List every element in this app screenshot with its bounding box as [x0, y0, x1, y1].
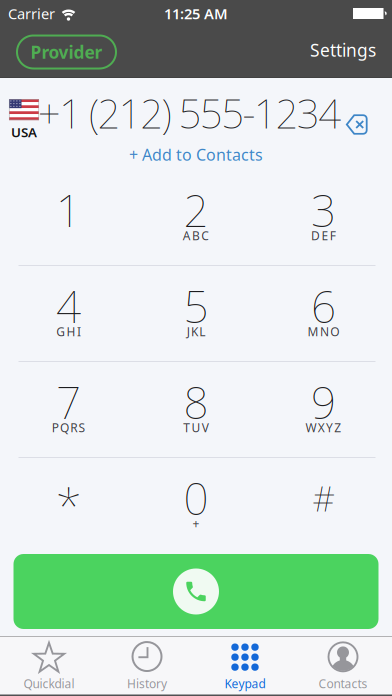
staticText: 6	[311, 277, 336, 335]
staticText: History	[127, 675, 167, 691]
button[interactable]: Settings	[310, 40, 376, 63]
button[interactable]: Contacts	[294, 637, 392, 696]
staticText: 7	[56, 373, 81, 431]
staticText: #	[312, 475, 334, 521]
staticText: ABC	[183, 227, 209, 243]
button[interactable]: Delete	[346, 114, 371, 135]
staticText: 5	[183, 277, 208, 335]
staticText: 11:25 AM	[164, 4, 228, 23]
button[interactable]: 4	[0, 265, 131, 361]
staticText: PQRS	[52, 419, 86, 435]
staticText: +	[192, 515, 199, 531]
staticText: DEF	[311, 227, 336, 243]
staticText: Keypad	[224, 675, 265, 691]
button[interactable]: 5	[131, 265, 261, 361]
button[interactable]: 6	[261, 265, 392, 361]
staticText: *	[56, 474, 82, 537]
button[interactable]: 1	[0, 169, 131, 265]
staticText: 3	[311, 181, 336, 239]
staticText: JKL	[187, 323, 205, 339]
button[interactable]: Quickdial	[0, 637, 98, 696]
staticText: TUV	[183, 419, 209, 435]
button[interactable]: 3	[261, 169, 392, 265]
button[interactable]: 7	[0, 361, 131, 457]
staticText: GHI	[56, 323, 81, 339]
staticText: 8	[183, 373, 208, 431]
button[interactable]: Call	[13, 554, 378, 629]
button[interactable]: 2	[131, 169, 261, 265]
button[interactable]: #	[261, 457, 392, 553]
staticText: USA	[11, 123, 37, 141]
staticText: Settings	[310, 38, 376, 61]
staticText: Provider	[30, 40, 102, 63]
button[interactable]: Keypad	[196, 637, 294, 696]
staticText: Quickdial	[23, 675, 74, 691]
staticText: WXYZ	[305, 419, 341, 435]
button[interactable]: 8	[131, 361, 261, 457]
staticText: 4	[56, 277, 81, 335]
staticText: + Add to Contacts	[129, 144, 263, 165]
staticText: 1	[56, 181, 81, 239]
button[interactable]: + Add to Contacts	[129, 144, 263, 165]
button[interactable]: History	[98, 637, 196, 696]
staticText: 2	[183, 181, 208, 239]
staticText: 0	[183, 469, 208, 527]
button[interactable]: *	[0, 457, 131, 553]
staticText: +1 (212) 555-1234	[38, 86, 341, 139]
button[interactable]: Provider	[17, 35, 116, 68]
button[interactable]: 9	[261, 361, 392, 457]
staticText: 9	[311, 373, 336, 431]
staticText: Carrier	[8, 4, 55, 23]
staticText: MNO	[308, 323, 339, 339]
button[interactable]: 0	[131, 457, 261, 553]
staticText: Contacts	[318, 675, 367, 691]
